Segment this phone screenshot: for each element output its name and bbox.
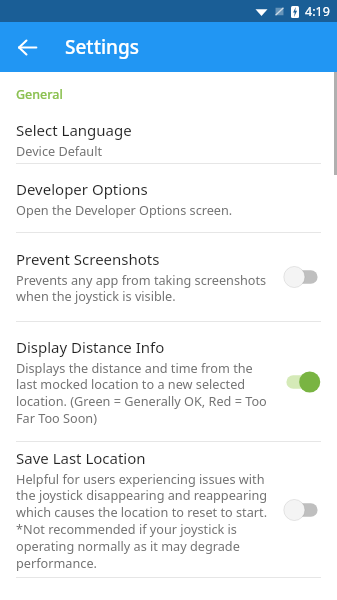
staticText: Save Last Location xyxy=(16,448,146,468)
staticText: Prevent Screenshots xyxy=(16,249,160,269)
button[interactable]: Back xyxy=(6,26,48,68)
button[interactable]: Display Distance Info xyxy=(0,322,337,441)
staticText: Display Distance Info xyxy=(16,337,165,357)
staticText: Displays the distance and time from the … xyxy=(16,359,271,427)
staticText: General xyxy=(16,86,63,103)
button[interactable]: Select Language xyxy=(0,116,337,163)
staticText: Open the Developer Options screen. xyxy=(16,201,233,218)
staticText: 4:19 xyxy=(305,3,330,20)
button[interactable]: Save Last Location xyxy=(0,442,337,577)
staticText: Prevents any app from taking screenshots… xyxy=(16,271,271,305)
button[interactable]: Disabled xyxy=(279,262,325,292)
button[interactable]: Enabled xyxy=(279,367,325,397)
staticText: Settings xyxy=(65,34,139,60)
staticText: Developer Options xyxy=(16,179,148,199)
staticText: Helpful for users experiencing issues wi… xyxy=(16,470,271,572)
staticText: Select Language xyxy=(16,120,132,140)
staticText: Device Default xyxy=(16,142,103,159)
button[interactable]: Disabled xyxy=(279,495,325,525)
button[interactable]: Developer Options xyxy=(0,164,337,232)
button[interactable]: Prevent Screenshots xyxy=(0,233,337,321)
